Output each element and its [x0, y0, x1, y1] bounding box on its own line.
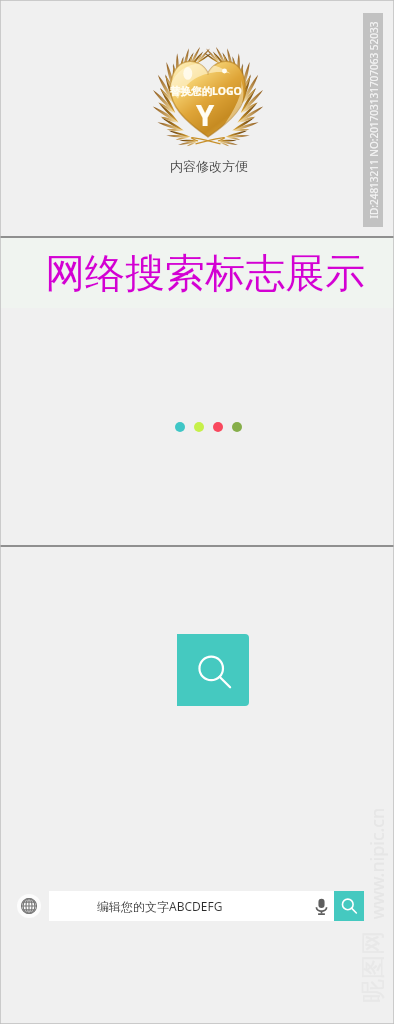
staticText: 替换您的LOGO — [170, 84, 242, 98]
button[interactable]: Language — [17, 894, 41, 918]
button[interactable]: Search submit — [334, 891, 364, 921]
staticText: 编辑您的文字ABCDEFG — [97, 898, 308, 914]
button[interactable]: Voice search — [308, 891, 334, 921]
staticText: Y — [196, 95, 215, 134]
staticText: ID:24813211 NO:201703131707063 52033 — [366, 21, 380, 218]
staticText: www.nipic.cn — [364, 807, 389, 919]
button[interactable]: 编辑您的文字ABCDEFG — [49, 891, 334, 921]
staticText: 昵图网 — [358, 931, 388, 1003]
staticText: 内容修改方便 — [170, 158, 248, 174]
button[interactable]: Search — [177, 634, 249, 706]
staticText: 网络搜索标志展示 — [45, 248, 365, 298]
